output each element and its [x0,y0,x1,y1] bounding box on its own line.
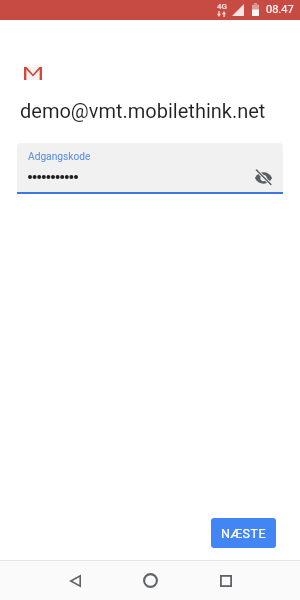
button[interactable]: Show password [250,164,276,190]
button[interactable]: NÆSTE [211,518,276,548]
staticText: demo@vmt.mobilethink.net [20,99,266,122]
staticText: 4G [217,2,227,11]
button[interactable]: Back [37,561,113,600]
button[interactable]: Home [113,561,188,600]
button[interactable]: Adgangskode [17,143,283,194]
staticText: Adgangskode [28,151,91,163]
staticText: NÆSTE [221,526,267,541]
button[interactable]: Recents [188,561,263,600]
staticText: 08.47 [266,3,294,16]
